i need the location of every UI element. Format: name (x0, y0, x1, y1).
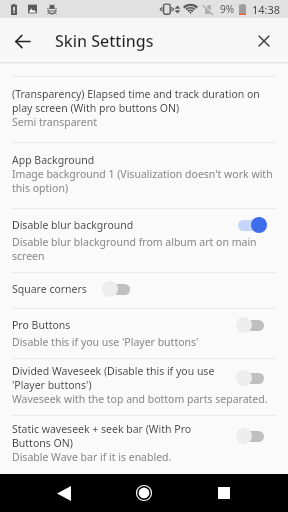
button[interactable]: Home (125, 474, 163, 512)
button[interactable]: Divided Waveseek (Disable this if you us… (0, 359, 288, 415)
staticText: Skin Settings (55, 30, 154, 52)
staticText: Disable blur blackground from album art … (12, 235, 276, 263)
staticText: Disable Wave bar if it is enabled. (12, 450, 172, 464)
staticText: Square corners (12, 282, 87, 296)
button[interactable]: Toggle (238, 368, 264, 388)
button[interactable]: Toggle (104, 279, 130, 299)
button[interactable]: Recents (205, 474, 243, 512)
button[interactable]: Disable blur background (0, 209, 288, 272)
button[interactable]: App Background (0, 143, 288, 208)
button[interactable]: Square corners (0, 273, 288, 308)
button[interactable]: Toggle (238, 315, 264, 335)
button[interactable]: Pro Buttons (0, 309, 288, 358)
staticText: Disable this if you use 'Player buttons' (12, 335, 199, 349)
staticText: Waveseek with the top and bottom parts s… (12, 392, 268, 406)
staticText: (Transparency) Elapsed time and track du… (12, 87, 276, 115)
button[interactable]: Static waveseek + seek bar (With Pro But… (0, 416, 288, 474)
staticText: Semi transparent (12, 115, 97, 129)
button[interactable]: Back (0, 19, 44, 63)
button[interactable]: Back (45, 474, 83, 512)
button[interactable]: Toggle (238, 215, 264, 235)
staticText: Pro Buttons (12, 318, 230, 332)
staticText: Static waveseek + seek bar (With Pro But… (12, 422, 230, 450)
staticText: 14:38 (252, 2, 281, 17)
staticText: Divided Waveseek (Disable this if you us… (12, 364, 230, 392)
button[interactable]: Toggle (238, 426, 264, 446)
staticText: App Background (12, 153, 95, 167)
staticText: Disable blur background (12, 218, 230, 232)
staticText: Image background 1 (Visualization doesn'… (12, 167, 276, 195)
button[interactable]: Close (242, 19, 286, 63)
staticText: 9% (220, 2, 235, 16)
button[interactable]: (Transparency) Elapsed time and track du… (0, 77, 288, 142)
